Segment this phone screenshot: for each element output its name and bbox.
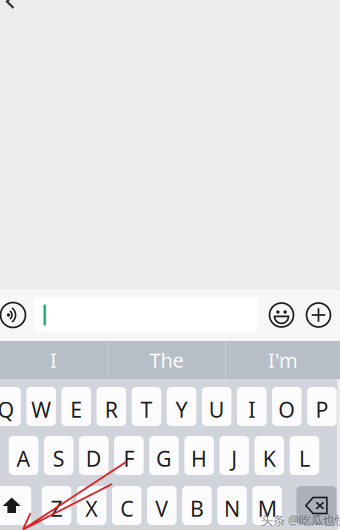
button[interactable]: I [237, 387, 266, 426]
staticText: A [17, 444, 31, 473]
button[interactable]: I [0, 341, 107, 379]
staticText: D [86, 444, 102, 473]
staticText: B [190, 494, 204, 523]
button[interactable]: Delete [296, 486, 336, 525]
staticText: N [224, 494, 240, 523]
staticText: I [248, 395, 255, 424]
button[interactable]: B [182, 486, 212, 525]
button[interactable]: X [77, 486, 106, 525]
staticText: Z [51, 494, 63, 523]
button[interactable]: W [26, 387, 56, 426]
button[interactable]: A [9, 436, 38, 475]
staticText: S [53, 444, 65, 473]
button[interactable]: S [44, 436, 73, 475]
button[interactable]: Shift [0, 486, 31, 525]
button[interactable]: D [79, 436, 109, 475]
button[interactable]: F [114, 436, 144, 475]
button[interactable]: P [307, 387, 337, 426]
staticText: L [299, 444, 310, 473]
staticText: W [31, 395, 51, 424]
staticText: The [149, 347, 183, 373]
staticText: E [70, 395, 82, 424]
staticText: V [155, 494, 168, 523]
staticText: K [263, 444, 276, 473]
staticText: C [120, 494, 133, 523]
button[interactable]: M [252, 486, 282, 525]
button[interactable]: G [149, 436, 179, 475]
button[interactable]: Y [167, 387, 196, 426]
button[interactable]: C [112, 486, 141, 525]
staticText: I [50, 347, 57, 373]
staticText: F [123, 444, 134, 473]
button[interactable]: Z [42, 486, 71, 525]
button[interactable]: More [306, 303, 330, 327]
button[interactable]: R [97, 387, 126, 426]
button[interactable]: Back [5, 0, 21, 8]
button[interactable]: J [219, 436, 249, 475]
staticText: 头条 @吃瓜也快乐 [261, 512, 340, 528]
button[interactable]: I'm [226, 341, 340, 379]
staticText: H [191, 444, 207, 473]
staticText: T [140, 395, 152, 424]
staticText: M [258, 494, 277, 523]
button[interactable]: Q [0, 387, 21, 426]
staticText: O [278, 395, 295, 424]
button[interactable]: U [202, 387, 231, 426]
staticText: R [105, 395, 118, 424]
button[interactable]: V [147, 486, 177, 525]
button[interactable]: H [184, 436, 214, 475]
staticText: U [209, 395, 225, 424]
staticText: I'm [268, 347, 298, 373]
button[interactable]: K [255, 436, 284, 475]
staticText: J [231, 444, 237, 473]
button[interactable]: L [290, 436, 319, 475]
staticText: G [156, 444, 172, 473]
button[interactable]: Emoji [269, 303, 293, 327]
button[interactable]: T [132, 387, 161, 426]
staticText: P [315, 395, 328, 424]
staticText: Q [0, 395, 15, 424]
button[interactable]: O [272, 387, 302, 426]
button[interactable]: The [108, 341, 225, 379]
staticText: X [85, 494, 98, 523]
staticText: Y [176, 395, 188, 424]
button[interactable]: Audio message [0, 302, 25, 327]
button[interactable]: E [61, 387, 91, 426]
button[interactable]: N [217, 486, 247, 525]
